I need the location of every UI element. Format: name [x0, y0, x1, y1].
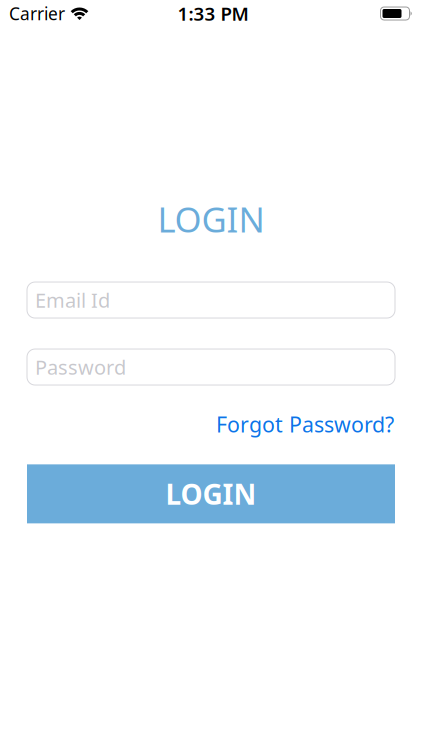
button[interactable]: LOGIN	[27, 464, 395, 523]
staticText: 1:33 PM	[177, 1, 248, 26]
button[interactable]: Forgot Password?	[216, 410, 394, 438]
staticText: Carrier	[9, 2, 65, 25]
button[interactable]: Email Id	[27, 282, 395, 318]
staticText: LOGIN	[165, 475, 256, 512]
staticText: Password	[35, 354, 126, 380]
button[interactable]: Password	[27, 349, 395, 385]
staticText: Forgot Password?	[216, 410, 394, 438]
staticText: LOGIN	[157, 196, 264, 242]
staticText: Email Id	[35, 287, 110, 313]
